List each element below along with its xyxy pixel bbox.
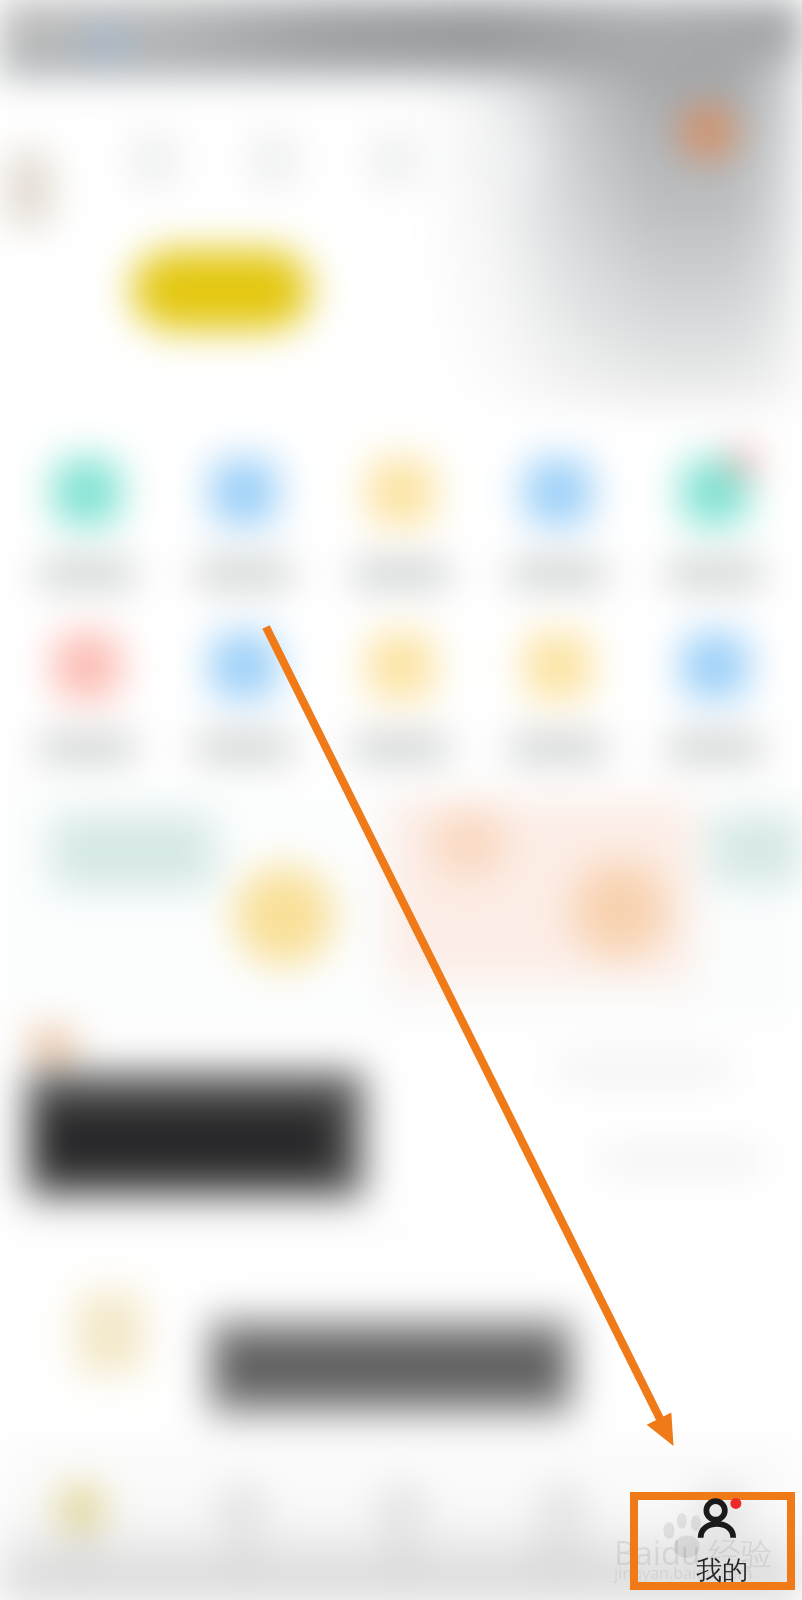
button[interactable] <box>17 455 157 585</box>
button[interactable] <box>331 629 471 759</box>
staticText: Baidu 经验 <box>614 1531 773 1575</box>
staticText: jingyan.baidu.com <box>614 1562 753 1584</box>
button[interactable] <box>6 800 378 1010</box>
button[interactable]: 分类 <box>161 1454 322 1600</box>
button[interactable] <box>645 629 785 759</box>
button[interactable] <box>17 629 157 759</box>
button[interactable] <box>645 455 785 585</box>
button[interactable]: 购物车 <box>482 1454 642 1600</box>
button[interactable] <box>702 800 802 1010</box>
button[interactable] <box>388 800 694 980</box>
staticText: 我的 <box>700 1540 744 1568</box>
button[interactable] <box>174 629 314 759</box>
button[interactable]: 我的 <box>642 1454 802 1600</box>
button[interactable]: 我的 <box>630 1492 795 1590</box>
button[interactable] <box>488 455 628 585</box>
staticText: 我的 <box>696 1554 748 1587</box>
button[interactable] <box>174 455 314 585</box>
button[interactable] <box>132 250 310 330</box>
button[interactable] <box>331 455 471 585</box>
button[interactable]: 首页 <box>0 1454 161 1600</box>
button[interactable] <box>488 629 628 759</box>
other: 我的 tab highlight <box>630 1492 795 1590</box>
button[interactable]: 消息 <box>322 1454 482 1600</box>
